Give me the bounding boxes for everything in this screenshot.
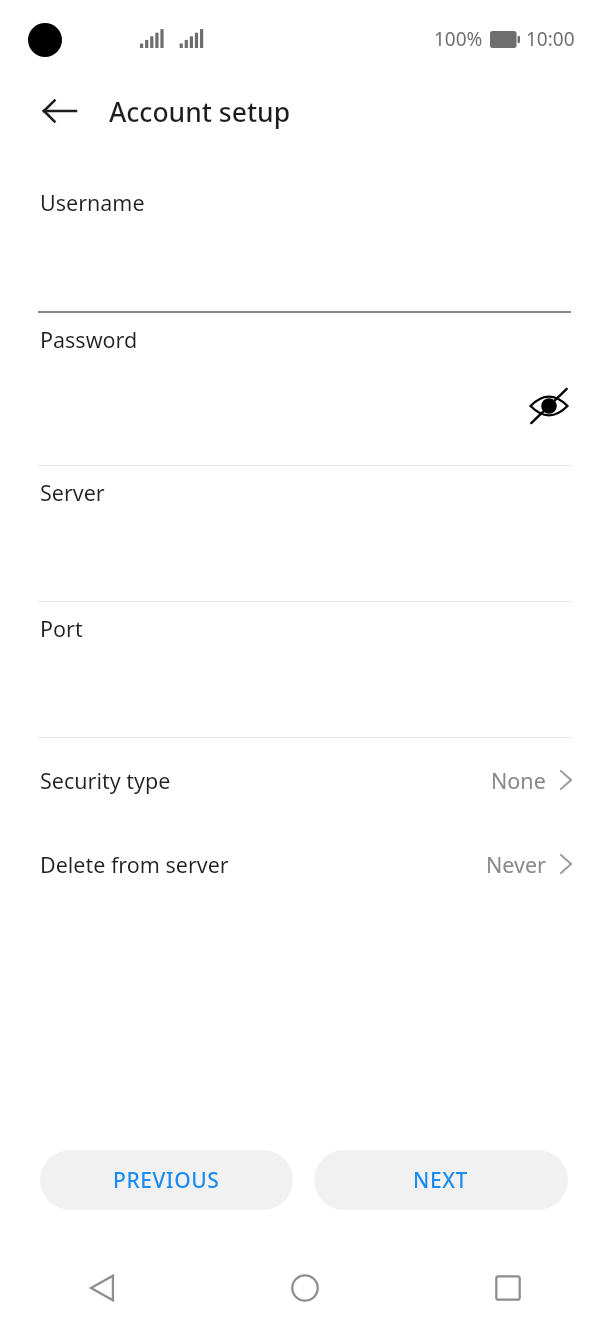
button[interactable]: Server: [0, 466, 609, 602]
button[interactable]: Port: [0, 602, 609, 738]
staticText: NEXT: [413, 1166, 469, 1195]
staticText: Username: [40, 188, 145, 217]
button[interactable]: Back: [28, 79, 92, 143]
button[interactable]: Delete from server: [0, 822, 609, 906]
staticText: Password: [40, 325, 138, 354]
staticText: Account setup: [109, 94, 291, 130]
staticText: Server: [40, 478, 105, 507]
staticText: 100%: [434, 26, 483, 52]
button[interactable]: Back: [0, 1255, 203, 1320]
button[interactable]: PREVIOUS: [40, 1150, 293, 1210]
staticText: 10:00: [526, 26, 575, 52]
staticText: Security type: [40, 766, 171, 795]
button[interactable]: Security type: [0, 738, 609, 822]
staticText: Delete from server: [40, 850, 229, 879]
button[interactable]: Home: [203, 1255, 406, 1320]
staticText: None: [491, 766, 546, 795]
button[interactable]: Username: [0, 176, 609, 313]
button[interactable]: NEXT: [314, 1150, 568, 1210]
staticText: Port: [40, 614, 83, 643]
button[interactable]: Recents: [406, 1255, 609, 1320]
staticText: Never: [486, 850, 546, 879]
button[interactable]: Password: [0, 313, 609, 466]
staticText: PREVIOUS: [113, 1166, 220, 1195]
button[interactable]: Show password: [519, 383, 579, 429]
